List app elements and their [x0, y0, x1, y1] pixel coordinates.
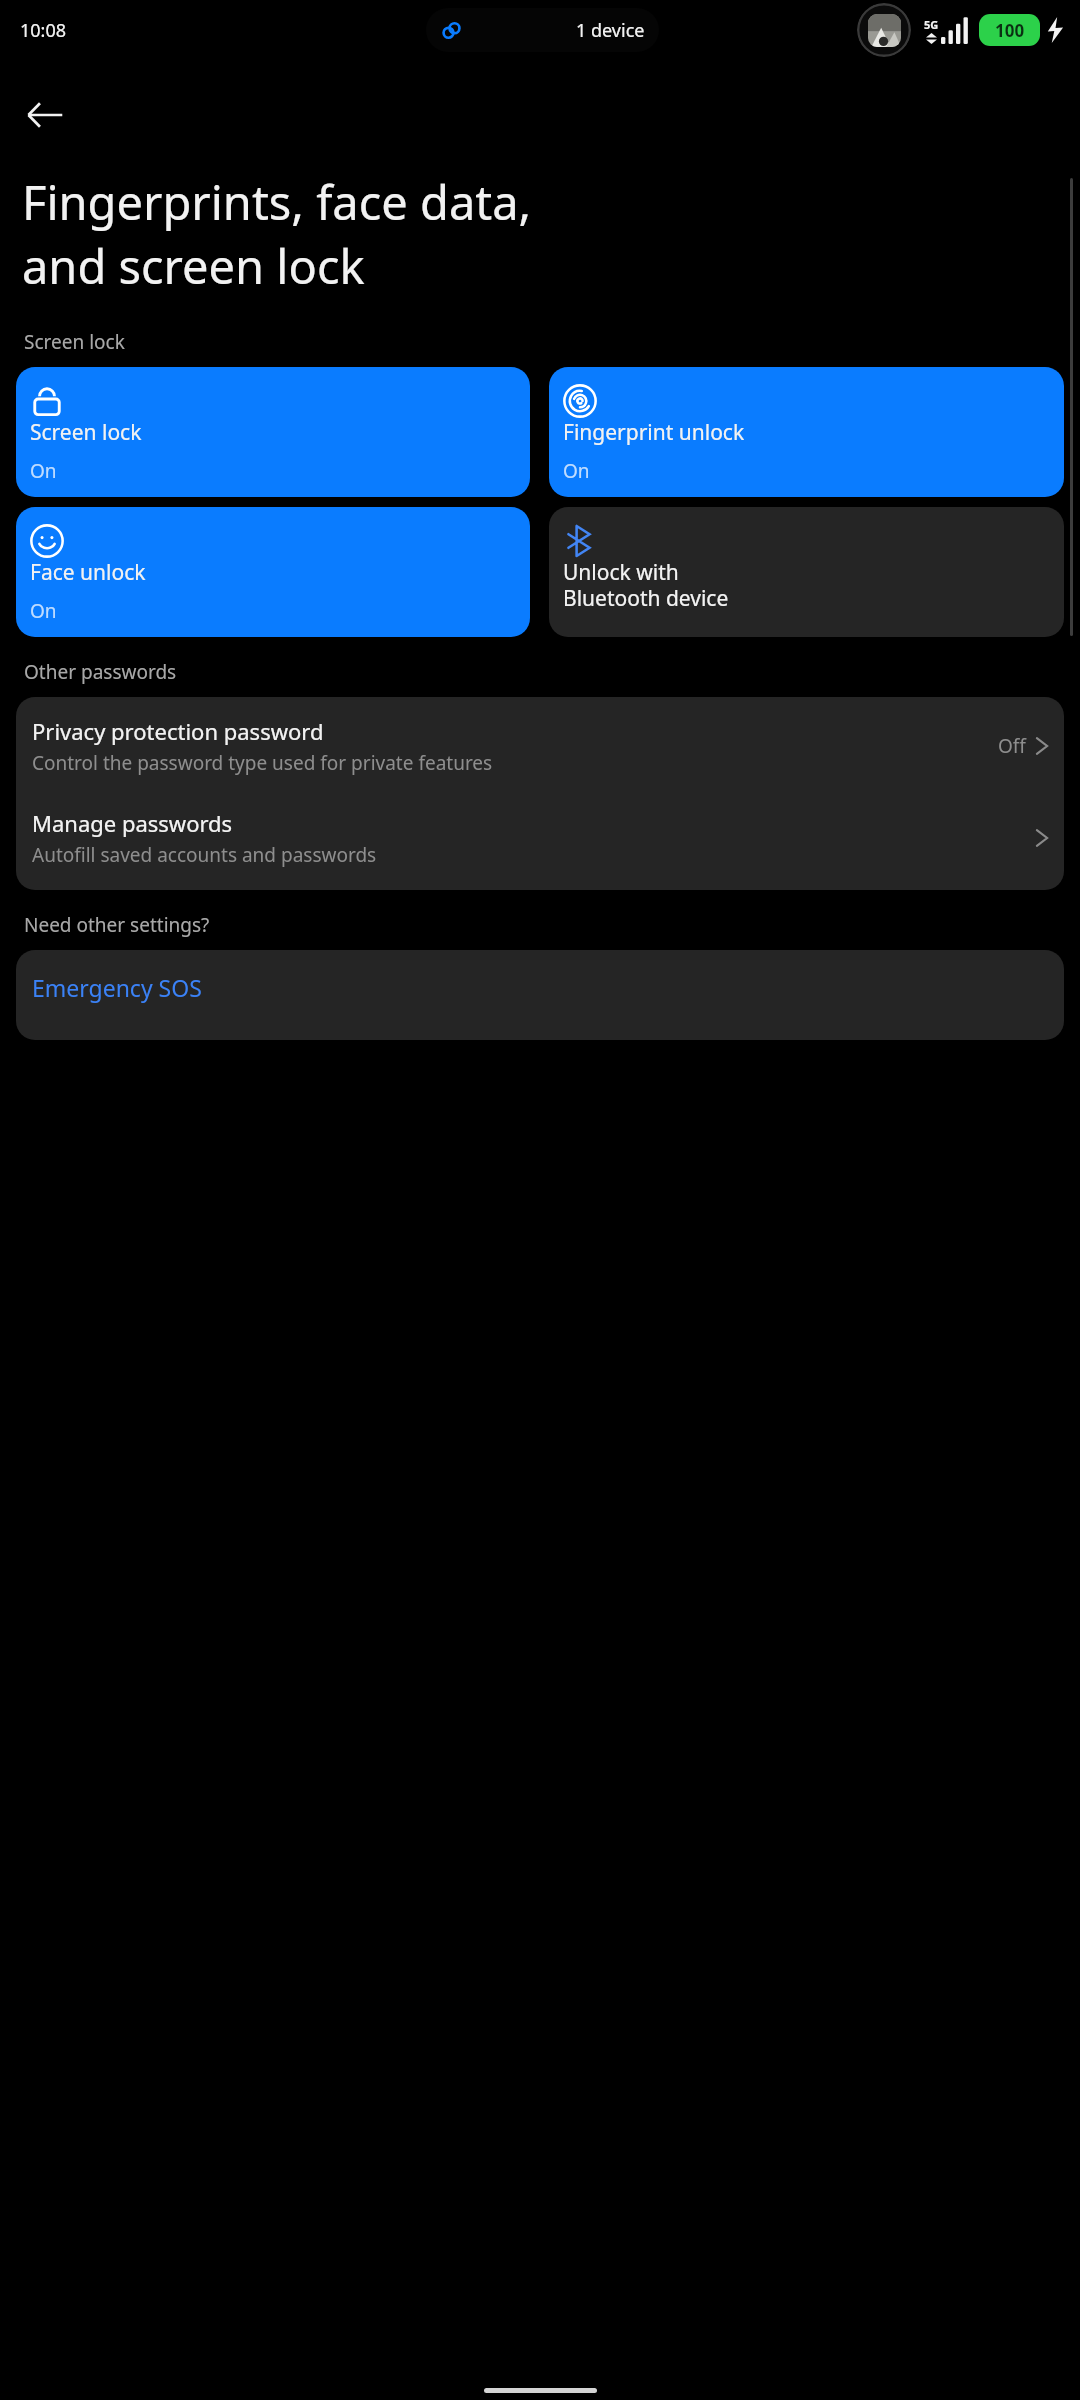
staticText: On: [30, 598, 57, 623]
staticText: and screen lock: [22, 234, 365, 298]
button[interactable]: Account: [857, 3, 911, 57]
button[interactable]: Linked devices: [426, 8, 659, 52]
staticText: Other passwords: [24, 659, 177, 685]
staticText: Emergency SOS: [32, 972, 202, 1003]
staticText: 1 device: [576, 18, 645, 43]
button[interactable]: Fingerprint unlock: [549, 367, 1064, 497]
staticText: Fingerprint unlock: [563, 418, 745, 447]
staticText: Unlock with Bluetooth device: [563, 558, 729, 613]
button[interactable]: Unlock with Bluetooth device: [549, 507, 1064, 637]
button[interactable]: Emergency SOS: [16, 950, 1064, 1040]
button[interactable]: Screen lock: [16, 367, 530, 497]
staticText: Autofill saved accounts and passwords: [32, 842, 377, 868]
button[interactable]: Face unlock: [16, 507, 530, 637]
button[interactable]: Back: [12, 82, 78, 148]
staticText: Control the password type used for priva…: [32, 750, 493, 776]
staticText: Screen lock: [30, 418, 142, 447]
button[interactable]: Manage passwords: [16, 792, 1064, 890]
staticText: 10:08: [20, 18, 67, 43]
staticText: On: [30, 458, 57, 483]
staticText: Off: [998, 733, 1026, 759]
staticText: On: [563, 458, 590, 483]
staticText: Manage passwords: [32, 808, 233, 838]
other: Linked devices: [440, 19, 463, 42]
staticText: Screen lock: [24, 329, 125, 355]
button[interactable]: Privacy protection password: [16, 697, 1064, 792]
staticText: Fingerprints, face data,: [22, 170, 532, 234]
staticText: 100: [995, 19, 1025, 42]
staticText: Face unlock: [30, 558, 146, 587]
staticText: Need other settings?: [24, 912, 210, 938]
staticText: Privacy protection password: [32, 716, 324, 746]
staticText: 5G: [924, 17, 939, 32]
